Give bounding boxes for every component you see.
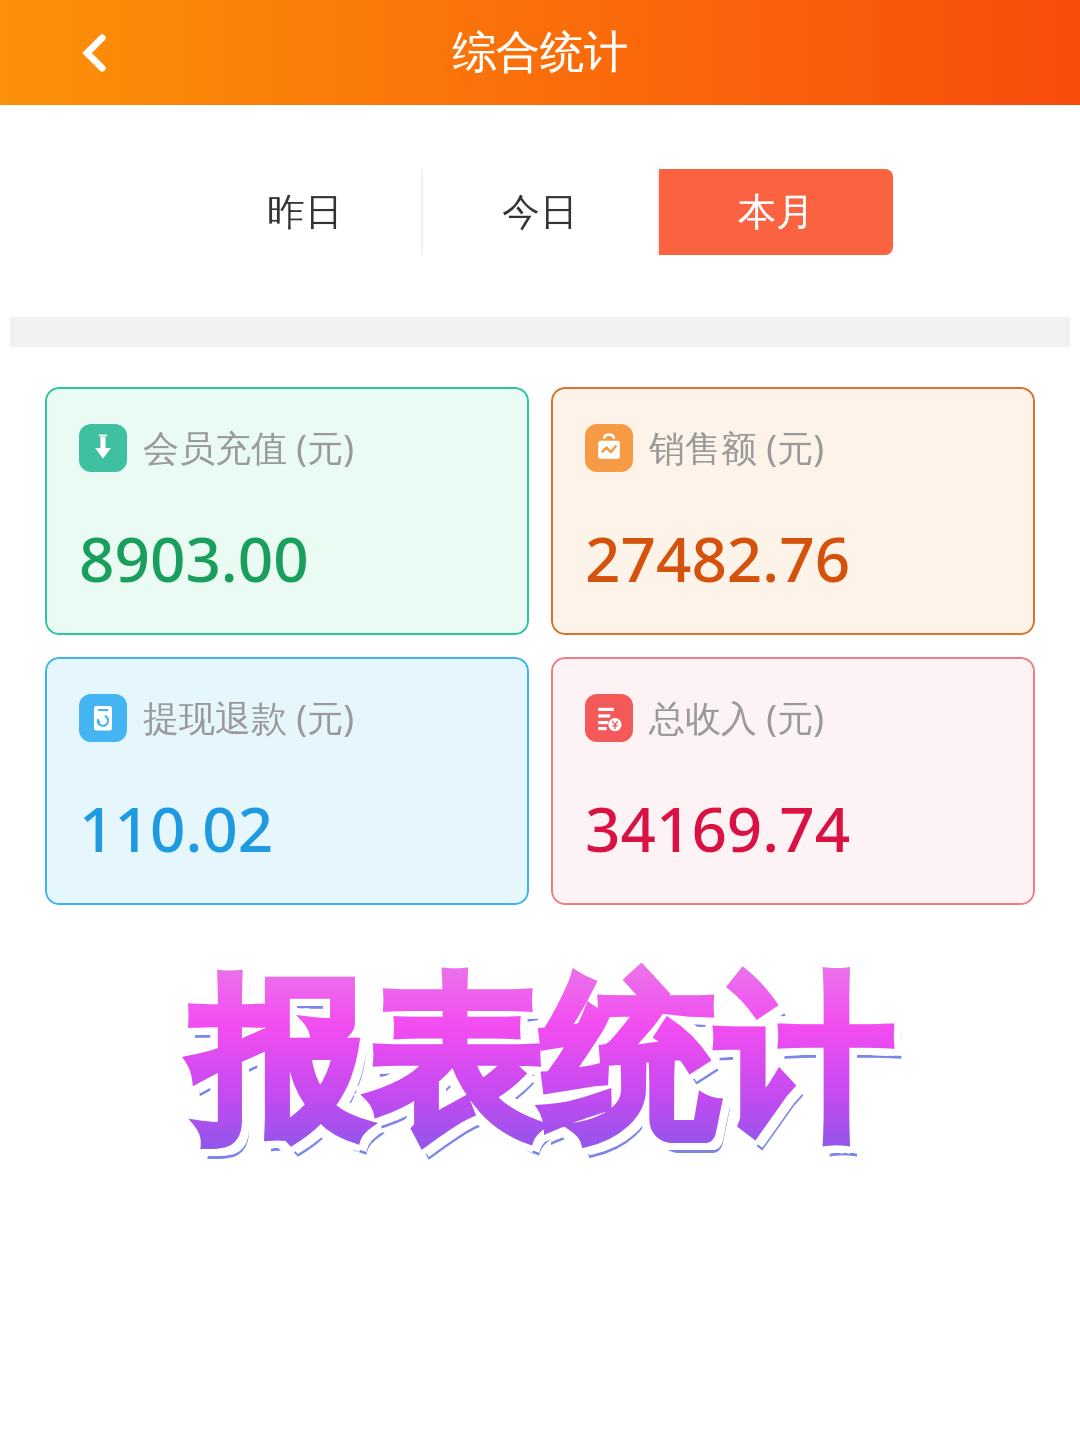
- staticText: 110.02: [79, 786, 274, 870]
- staticText: 8903.00: [79, 516, 309, 600]
- staticText: 报表统计: [183, 960, 883, 1180]
- staticText: 报表统计: [190, 960, 890, 1180]
- staticText: 报表统计: [190, 946, 890, 1166]
- staticText: 提现退款 (元): [143, 693, 354, 742]
- staticText: 总收入 (元): [649, 693, 824, 742]
- staticText: 34169.74: [585, 786, 851, 870]
- staticText: 昨日: [267, 188, 343, 236]
- staticText: 今日: [502, 188, 578, 236]
- button[interactable]: 昨日: [188, 169, 421, 255]
- staticText: 综合统计: [452, 25, 628, 80]
- staticText: 报表统计: [183, 953, 883, 1173]
- staticText: 销售额 (元): [649, 423, 824, 472]
- button[interactable]: 本月: [659, 169, 893, 255]
- staticText: 报表统计: [183, 946, 883, 1166]
- staticText: 报表统计: [197, 963, 897, 1183]
- button[interactable]: 今日: [423, 169, 657, 255]
- staticText: 报表统计: [197, 960, 897, 1180]
- button[interactable]: 总收入 (元): [551, 657, 1035, 905]
- button[interactable]: 销售额 (元): [551, 387, 1035, 635]
- staticText: 报表统计: [190, 953, 890, 1173]
- button[interactable]: 会员充值 (元): [45, 387, 529, 635]
- staticText: 本月: [738, 188, 814, 236]
- staticText: 27482.76: [585, 516, 851, 600]
- button[interactable]: 提现退款 (元): [45, 657, 529, 905]
- staticText: 报表统计: [197, 953, 897, 1173]
- button[interactable]: Back: [50, 8, 140, 98]
- staticText: 会员充值 (元): [143, 423, 354, 472]
- staticText: 报表统计: [197, 946, 897, 1166]
